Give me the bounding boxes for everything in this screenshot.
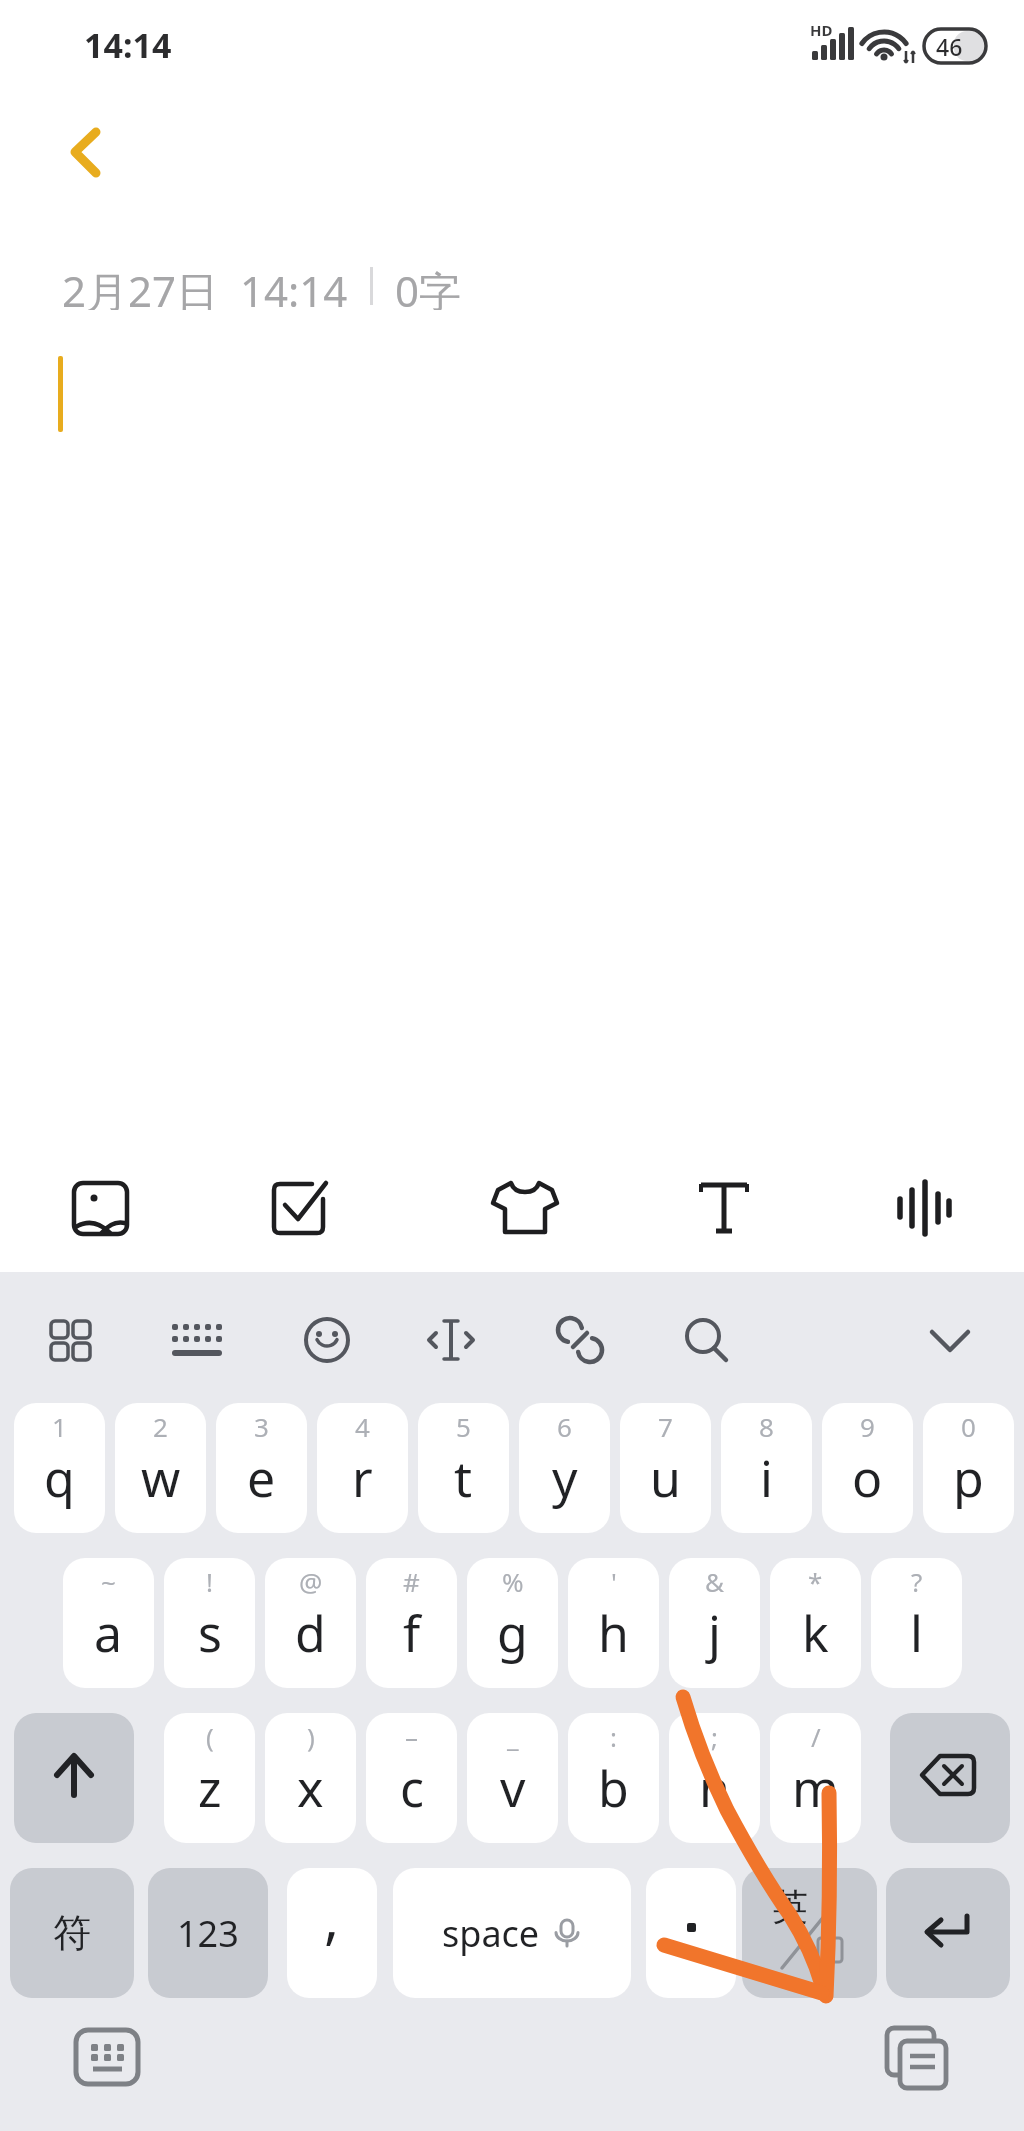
staticText: ): [307, 1719, 315, 1754]
staticText: ~: [101, 1564, 116, 1599]
staticText: %: [502, 1564, 524, 1599]
button[interactable]: _: [467, 1713, 558, 1843]
button[interactable]: 9: [822, 1403, 913, 1533]
button[interactable]: 123: [148, 1868, 268, 1998]
button[interactable]: 英: [742, 1868, 877, 1998]
staticText: w: [141, 1444, 181, 1512]
staticText: f: [403, 1599, 421, 1667]
button[interactable]: 5: [418, 1403, 509, 1533]
button[interactable]: !: [164, 1558, 255, 1688]
staticText: k: [802, 1599, 829, 1667]
button[interactable]: [880, 2022, 956, 2098]
staticText: c: [400, 1754, 424, 1822]
button[interactable]: [264, 1173, 336, 1245]
button[interactable]: 0: [923, 1403, 1014, 1533]
button[interactable]: [489, 1172, 561, 1244]
button[interactable]: 6: [519, 1403, 610, 1533]
button[interactable]: 8: [721, 1403, 812, 1533]
button[interactable]: %: [467, 1558, 558, 1688]
staticText: *: [808, 1564, 823, 1599]
button[interactable]: [920, 1316, 980, 1368]
staticText: 9: [860, 1409, 875, 1444]
button[interactable]: 2: [115, 1403, 206, 1533]
staticText: n: [699, 1754, 730, 1822]
staticText: l: [910, 1599, 923, 1667]
button[interactable]: [646, 1868, 736, 1998]
staticText: v: [500, 1754, 526, 1822]
staticText: –: [405, 1719, 419, 1754]
staticText: 5: [456, 1409, 471, 1444]
button[interactable]: :: [568, 1713, 659, 1843]
staticText: d: [295, 1599, 326, 1667]
button[interactable]: /: [770, 1713, 861, 1843]
button[interactable]: ;: [669, 1713, 760, 1843]
staticText: b: [598, 1754, 629, 1822]
staticText: g: [497, 1599, 528, 1667]
staticText: HD: [810, 20, 833, 40]
staticText: m: [792, 1754, 839, 1822]
button[interactable]: [44, 1314, 100, 1370]
staticText: s: [198, 1599, 222, 1667]
staticText: z: [198, 1754, 222, 1822]
button[interactable]: [58, 116, 114, 188]
staticText: 123: [177, 1909, 239, 1958]
button[interactable]: ?: [871, 1558, 962, 1688]
staticText: 1: [52, 1409, 67, 1444]
staticText: 8: [759, 1409, 774, 1444]
button[interactable]: [70, 2024, 144, 2094]
button[interactable]: ,: [287, 1868, 377, 1998]
staticText: r: [352, 1444, 373, 1512]
staticText: 14:14: [84, 22, 172, 68]
button[interactable]: [299, 1312, 355, 1368]
button[interactable]: [552, 1312, 608, 1368]
staticText: #: [403, 1564, 420, 1599]
button[interactable]: [423, 1312, 479, 1368]
button[interactable]: [888, 1172, 960, 1244]
button[interactable]: ~: [63, 1558, 154, 1688]
staticText: h: [598, 1599, 629, 1667]
staticText: 0: [961, 1409, 976, 1444]
staticText: 4: [355, 1409, 370, 1444]
staticText: o: [852, 1444, 883, 1512]
staticText: ,: [324, 1879, 340, 1955]
staticText: p: [953, 1444, 984, 1512]
button[interactable]: ): [265, 1713, 356, 1843]
staticText: ;: [711, 1719, 718, 1754]
button[interactable]: 4: [317, 1403, 408, 1533]
staticText: /: [811, 1719, 821, 1754]
button[interactable]: #: [366, 1558, 457, 1688]
button[interactable]: [886, 1868, 1010, 1998]
button[interactable]: *: [770, 1558, 861, 1688]
staticText: a: [94, 1599, 123, 1667]
staticText: &: [705, 1564, 725, 1599]
button[interactable]: [167, 1314, 225, 1370]
button[interactable]: @: [265, 1558, 356, 1688]
staticText: ': [611, 1564, 617, 1599]
staticText: 英: [772, 1884, 808, 1929]
staticText: (: [206, 1719, 214, 1754]
button[interactable]: [890, 1713, 1010, 1843]
staticText: ?: [911, 1564, 923, 1599]
button[interactable]: space: [393, 1868, 631, 1998]
button[interactable]: (: [164, 1713, 255, 1843]
button[interactable]: [677, 1312, 733, 1368]
staticText: y: [552, 1444, 578, 1512]
button[interactable]: [14, 1713, 134, 1843]
staticText: 6: [557, 1409, 572, 1444]
button[interactable]: 1: [14, 1403, 105, 1533]
staticText: @: [299, 1564, 323, 1599]
button[interactable]: 符: [10, 1868, 134, 1998]
button[interactable]: [690, 1176, 758, 1240]
staticText: 46: [936, 31, 963, 62]
button[interactable]: [64, 1173, 136, 1245]
staticText: e: [247, 1444, 276, 1512]
button[interactable]: –: [366, 1713, 457, 1843]
staticText: _: [507, 1719, 519, 1754]
staticText: 3: [254, 1409, 269, 1444]
button[interactable]: 3: [216, 1403, 307, 1533]
button[interactable]: 7: [620, 1403, 711, 1533]
staticText: j: [708, 1599, 721, 1667]
button[interactable]: &: [669, 1558, 760, 1688]
staticText: 符: [53, 1909, 91, 1957]
button[interactable]: ': [568, 1558, 659, 1688]
